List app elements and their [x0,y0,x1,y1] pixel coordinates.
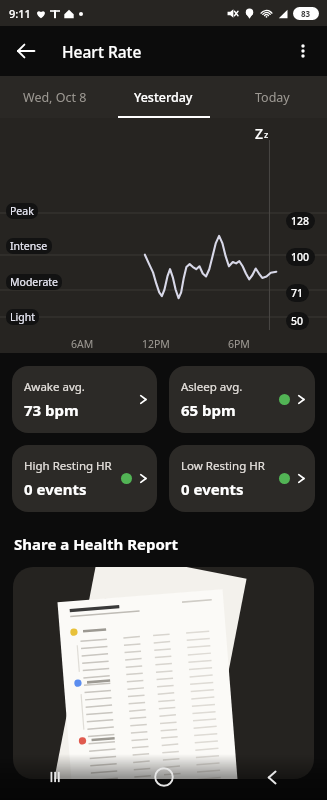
staticText: 71 [291,286,304,300]
staticText: 73 bpm [24,400,79,420]
staticText: High Resting HR [24,458,112,474]
staticText: 83 [301,8,311,19]
button[interactable]: Low Resting HR [169,445,315,512]
staticText: z [264,128,269,140]
staticText: 12PM [142,337,170,351]
staticText: Intense [10,239,48,253]
staticText: Light [10,310,35,324]
staticText: 50 [291,314,304,328]
button[interactable]: Back [218,754,327,800]
staticText: 9:11 [9,6,31,21]
button[interactable]: High Resting HR [12,445,157,512]
staticText: 0 events [24,479,87,499]
button[interactable]: Yesterday [109,76,218,118]
staticText: Awake avg. [24,379,85,395]
staticText: Yesterday [134,89,193,106]
staticText: Heart Rate [62,41,142,62]
staticText: 0 events [181,479,244,499]
staticText: Low Resting HR [181,458,265,474]
button[interactable]: More options [285,33,321,69]
staticText: 100 [291,250,310,264]
staticText: Z [255,124,264,143]
staticText: Peak [10,204,34,218]
button[interactable]: Today [218,76,327,118]
button[interactable]: Awake avg. [12,366,157,433]
staticText: Share a Health Report [14,534,179,554]
staticText: 6PM [228,337,250,351]
button[interactable]: Wed, Oct 8 [0,76,109,118]
staticText: Asleep avg. [181,379,243,395]
staticText: Moderate [10,275,58,289]
staticText: Today [255,89,290,106]
button[interactable]: Asleep avg. [169,366,315,433]
staticText: Wed, Oct 8 [23,89,87,106]
staticText: 128 [291,214,310,228]
button[interactable]: Recent apps [0,754,109,800]
button[interactable]: Share a Health Report [13,567,314,779]
button[interactable]: Home [109,754,218,800]
staticText: 6AM [71,337,94,351]
button[interactable]: Back [8,33,44,69]
staticText: 65 bpm [181,400,236,420]
